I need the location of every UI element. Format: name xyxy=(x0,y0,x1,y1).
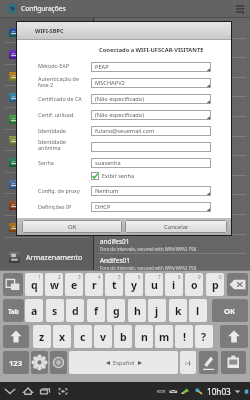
button[interactable]: ? xyxy=(195,325,213,348)
button[interactable]: e xyxy=(65,273,83,296)
button[interactable]: Cancelar xyxy=(125,220,227,233)
button[interactable]: Idioma xyxy=(0,217,93,237)
button[interactable]: i xyxy=(165,273,183,296)
button[interactable]: Tela xyxy=(0,66,93,86)
staticText: 123 xyxy=(9,358,23,368)
button[interactable]: andifes01 xyxy=(100,158,240,173)
button[interactable]: p xyxy=(206,273,224,296)
staticText: Fora do intervalo, secured with WPA/WPA2… xyxy=(100,246,197,252)
button[interactable]: b xyxy=(114,325,132,348)
button[interactable]: d xyxy=(66,299,84,322)
button[interactable]: Aplicativos xyxy=(0,130,93,150)
staticText: DHCP xyxy=(95,203,111,211)
staticText: OK xyxy=(224,306,236,316)
button[interactable]: Emoji xyxy=(180,351,196,374)
button[interactable]: MSCHAPV2 xyxy=(91,78,211,88)
button[interactable]: c xyxy=(74,325,92,348)
button[interactable]: Handwriting xyxy=(199,351,218,374)
button[interactable]: Segurança xyxy=(0,195,93,215)
button[interactable]: v xyxy=(94,325,112,348)
button[interactable]: suasenha xyxy=(91,158,211,168)
button[interactable]: Voice input xyxy=(50,351,67,374)
button[interactable]: andifes01 xyxy=(100,41,240,56)
staticText: ! xyxy=(183,330,186,344)
staticText: Fora do intervalo, secured with WPA/WPA2… xyxy=(100,69,197,75)
button[interactable]: Andifes01 xyxy=(100,99,240,114)
button[interactable]: Screenshot xyxy=(55,382,71,400)
staticText: 8 xyxy=(178,274,181,280)
button[interactable]: a xyxy=(25,299,43,322)
button[interactable]: (Não especificado) xyxy=(91,94,211,104)
staticText: andifes01 xyxy=(100,158,130,167)
button[interactable]: Exibir senha xyxy=(91,172,135,180)
button[interactable]: Tab xyxy=(3,299,24,322)
button[interactable]: k xyxy=(169,299,187,322)
button[interactable]: Home xyxy=(20,382,36,400)
staticText: k xyxy=(175,304,182,318)
button[interactable] xyxy=(91,142,211,152)
button[interactable]: l xyxy=(189,299,207,322)
button[interactable]: Localização xyxy=(0,174,93,194)
button[interactable]: Recent apps xyxy=(37,382,53,400)
button[interactable]: More options xyxy=(233,2,247,16)
button[interactable]: Andifes01 xyxy=(100,178,240,193)
button[interactable]: andifes01 xyxy=(100,237,240,252)
staticText: Idioma xyxy=(23,223,44,231)
button[interactable]: q xyxy=(25,273,43,296)
button[interactable]: OK xyxy=(212,299,248,322)
staticText: m xyxy=(159,330,170,344)
button[interactable]: Español xyxy=(69,351,178,374)
button[interactable]: j xyxy=(148,299,166,322)
button[interactable]: Keyboard settings xyxy=(31,351,48,374)
button[interactable]: ! xyxy=(175,325,193,348)
button[interactable]: Symbols xyxy=(3,273,23,296)
button[interactable]: Wi-Fi xyxy=(0,22,93,42)
staticText: 1 xyxy=(38,274,41,280)
button[interactable]: Andifes01 xyxy=(100,217,240,232)
button[interactable]: t xyxy=(105,273,123,296)
staticText: y xyxy=(131,278,137,292)
staticText: Armazenamento xyxy=(23,93,72,101)
button[interactable]: OK xyxy=(22,220,122,233)
button[interactable]: y xyxy=(125,273,143,296)
button[interactable]: Contas xyxy=(0,152,93,172)
button[interactable]: Bateria xyxy=(0,109,93,129)
button[interactable]: DHCP xyxy=(91,202,211,212)
button[interactable]: w xyxy=(45,273,63,296)
button[interactable]: f xyxy=(87,299,105,322)
button[interactable]: andifes01 xyxy=(100,119,240,134)
button[interactable]: z xyxy=(33,325,51,348)
button[interactable]: Andifes01 xyxy=(100,21,240,36)
button[interactable]: andifes01 xyxy=(100,80,240,95)
button[interactable]: u xyxy=(145,273,163,296)
button[interactable]: PEAP xyxy=(91,62,211,72)
button[interactable]: Andifes01 xyxy=(100,139,240,154)
button[interactable]: r xyxy=(85,273,103,296)
button[interactable]: Back xyxy=(2,382,18,400)
staticText: v xyxy=(100,330,106,344)
button[interactable]: (Não especificado) xyxy=(91,110,211,120)
button[interactable]: Som xyxy=(0,44,93,64)
button[interactable]: g xyxy=(107,299,125,322)
button[interactable]: m xyxy=(155,325,173,348)
button[interactable]: Armazenamento xyxy=(0,246,93,268)
button[interactable]: Nenhum xyxy=(91,186,211,196)
button[interactable]: Shift right xyxy=(220,325,248,348)
staticText: Fora do intervalo, secured with WPA/WPA2… xyxy=(100,50,197,56)
button[interactable]: x xyxy=(53,325,71,348)
button[interactable]: andifes01 xyxy=(100,197,240,212)
button[interactable]: o xyxy=(185,273,203,296)
staticText: 6 xyxy=(138,274,141,280)
button[interactable]: Shift xyxy=(3,325,29,348)
button[interactable]: n xyxy=(135,325,153,348)
button[interactable]: Numbers xyxy=(3,351,29,374)
button[interactable]: s xyxy=(46,299,64,322)
button[interactable]: fulano@seuemail.com xyxy=(91,126,211,136)
button[interactable]: Armazenamento xyxy=(0,87,93,107)
button[interactable]: Andifes01 xyxy=(100,60,240,75)
button[interactable]: Andifes01 xyxy=(100,256,240,271)
button[interactable]: h xyxy=(128,299,146,322)
button[interactable]: Backspace xyxy=(227,273,248,296)
button[interactable]: Clipboard xyxy=(221,351,246,374)
staticText: Fora do intervalo, secured with WPA/WPA2… xyxy=(100,128,197,134)
